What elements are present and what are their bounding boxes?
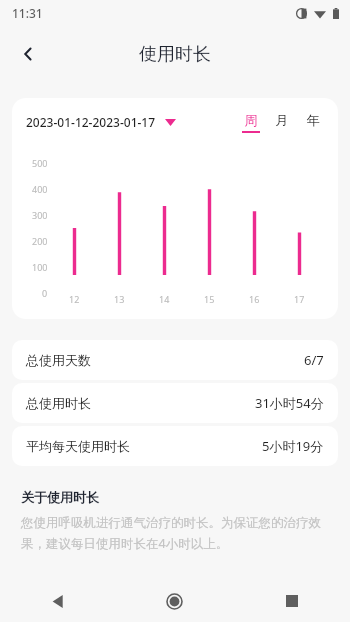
- staticText: 使用时长: [139, 43, 211, 66]
- staticText: 总使用天数: [26, 352, 91, 368]
- staticText: 总使用时长: [26, 395, 91, 411]
- button[interactable]: 年: [302, 112, 324, 133]
- button[interactable]: 总使用时长: [12, 383, 338, 423]
- staticText: 16: [249, 293, 260, 305]
- staticText: 5小时19分: [262, 437, 324, 455]
- staticText: 17: [294, 293, 305, 305]
- button[interactable]: Back: [0, 580, 116, 622]
- staticText: 12: [69, 293, 80, 305]
- button[interactable]: Home: [116, 580, 233, 622]
- button[interactable]: Back: [8, 34, 48, 74]
- staticText: 年: [302, 112, 324, 128]
- button[interactable]: 月: [271, 112, 293, 133]
- button[interactable]: 2023-01-12-2023-01-17: [26, 114, 176, 130]
- button[interactable]: Recent apps: [233, 580, 350, 622]
- staticText: 400: [32, 183, 48, 195]
- staticText: 15: [204, 293, 215, 305]
- staticText: 11:31: [12, 5, 43, 21]
- staticText: 31小时54分: [255, 394, 324, 412]
- staticText: 500: [32, 157, 48, 169]
- button[interactable]: 平均每天使用时长: [12, 426, 338, 466]
- staticText: 周: [240, 112, 262, 128]
- staticText: 300: [32, 209, 48, 221]
- staticText: 0: [42, 287, 48, 299]
- staticText: 6/7: [304, 351, 324, 369]
- staticText: 您使用呼吸机进行通气治疗的时长。为保证您的治疗效果，建议每日使用时长在4小时以上…: [21, 515, 329, 552]
- staticText: 14: [159, 293, 170, 305]
- staticText: 月: [271, 112, 293, 128]
- staticText: 200: [32, 235, 48, 247]
- staticText: 100: [32, 261, 48, 273]
- staticText: 13: [114, 293, 125, 305]
- button[interactable]: 总使用天数: [12, 340, 338, 380]
- staticText: 平均每天使用时长: [26, 438, 130, 454]
- staticText: 2023-01-12-2023-01-17: [26, 114, 156, 130]
- button[interactable]: 周: [240, 112, 262, 133]
- staticText: 关于使用时长: [21, 489, 99, 505]
